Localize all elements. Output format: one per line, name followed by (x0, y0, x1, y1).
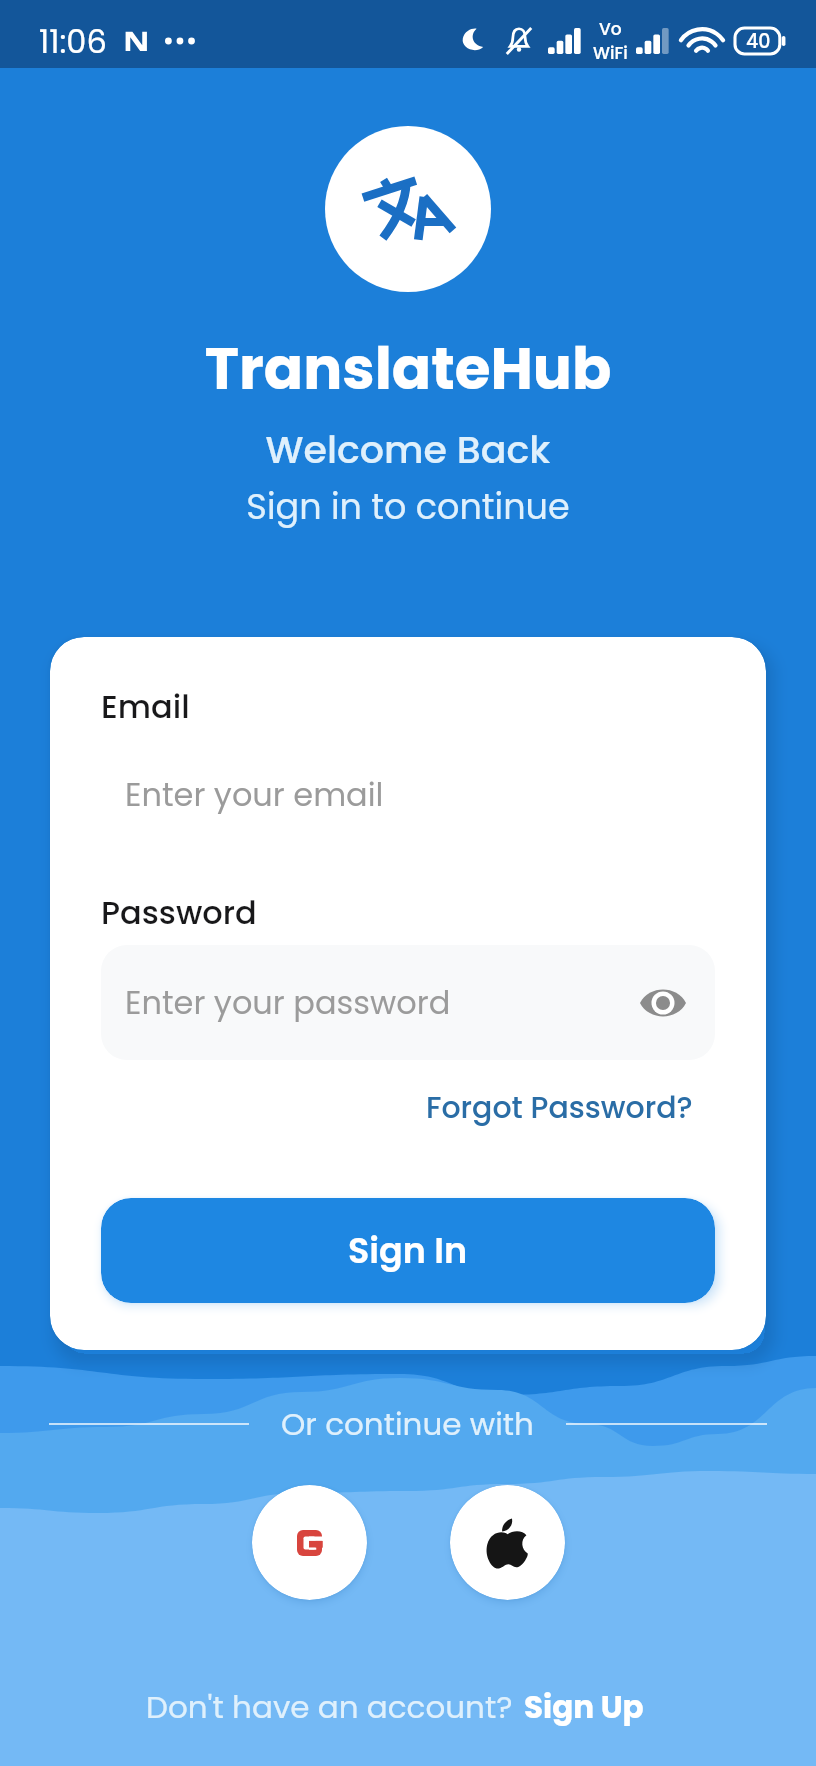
staticText: Email (101, 684, 190, 729)
button[interactable]: Continue with Apple (450, 1485, 565, 1600)
staticText: Sign Up (524, 1685, 644, 1728)
staticText: Enter your password (125, 980, 451, 1025)
button[interactable]: Enter your email (101, 737, 715, 852)
staticText: WiFi (593, 41, 628, 65)
staticText: Forgot Password? (426, 1087, 693, 1129)
staticText: Sign In (348, 1226, 468, 1275)
staticText: Welcome Back (0, 423, 816, 476)
staticText: Don't have an account? (146, 1685, 513, 1728)
staticText: 40 (746, 28, 771, 55)
button[interactable]: Enter your password (101, 945, 715, 1060)
button[interactable]: Continue with Google (252, 1485, 367, 1600)
staticText: Password (101, 890, 257, 935)
button[interactable]: Sign In (101, 1198, 715, 1303)
button[interactable]: Show password (635, 975, 691, 1031)
staticText: Vo (599, 17, 622, 41)
staticText: Or continue with (281, 1402, 534, 1445)
staticText: Sign in to continue (0, 482, 816, 531)
staticText: 11:06 (39, 19, 107, 64)
button[interactable]: Sign Up (513, 1685, 644, 1728)
staticText: TranslateHub (0, 328, 816, 409)
button[interactable]: Forgot Password? (404, 1083, 715, 1133)
staticText: Enter your email (125, 772, 384, 817)
